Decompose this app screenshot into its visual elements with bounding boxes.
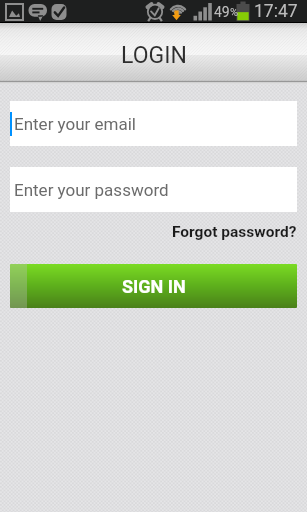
- button[interactable]: SIGN IN: [10, 264, 297, 308]
- staticText: 17:47: [254, 1, 298, 22]
- button[interactable]: Enter your email: [10, 101, 297, 146]
- staticText: LOGIN: [121, 42, 187, 69]
- staticText: 49: [214, 4, 230, 20]
- staticText: Enter your password: [14, 180, 169, 200]
- staticText: Enter your email: [14, 114, 137, 134]
- button[interactable]: Forgot password?: [162, 221, 307, 247]
- staticText: SIGN IN: [122, 276, 186, 297]
- button[interactable]: Enter your password: [10, 167, 297, 212]
- staticText: %: [230, 6, 239, 19]
